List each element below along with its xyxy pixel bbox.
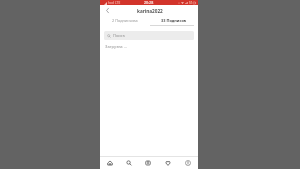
staticText: 20:28 <box>144 0 154 5</box>
button[interactable]: Back <box>100 5 114 15</box>
staticText: Загрузка ... <box>105 44 128 50</box>
button[interactable]: Profile <box>178 157 198 169</box>
staticText: LTE <box>115 1 121 5</box>
button[interactable]: Home <box>100 157 119 169</box>
button[interactable]: 2 Подписчика <box>100 15 149 25</box>
button[interactable]: 33 Подписок <box>149 15 198 25</box>
staticText: 51 <box>189 1 193 5</box>
staticText: hod <box>108 1 114 5</box>
button[interactable]: Поиск <box>104 31 194 40</box>
staticText: 33 Подписок <box>161 18 187 23</box>
button[interactable]: Add post <box>138 157 158 169</box>
staticText: 2 Подписчика <box>112 18 138 23</box>
button[interactable]: Activity <box>158 157 178 169</box>
staticText: karina2022 <box>137 8 163 14</box>
button[interactable]: Search <box>119 157 138 169</box>
staticText: Поиск <box>113 33 125 38</box>
